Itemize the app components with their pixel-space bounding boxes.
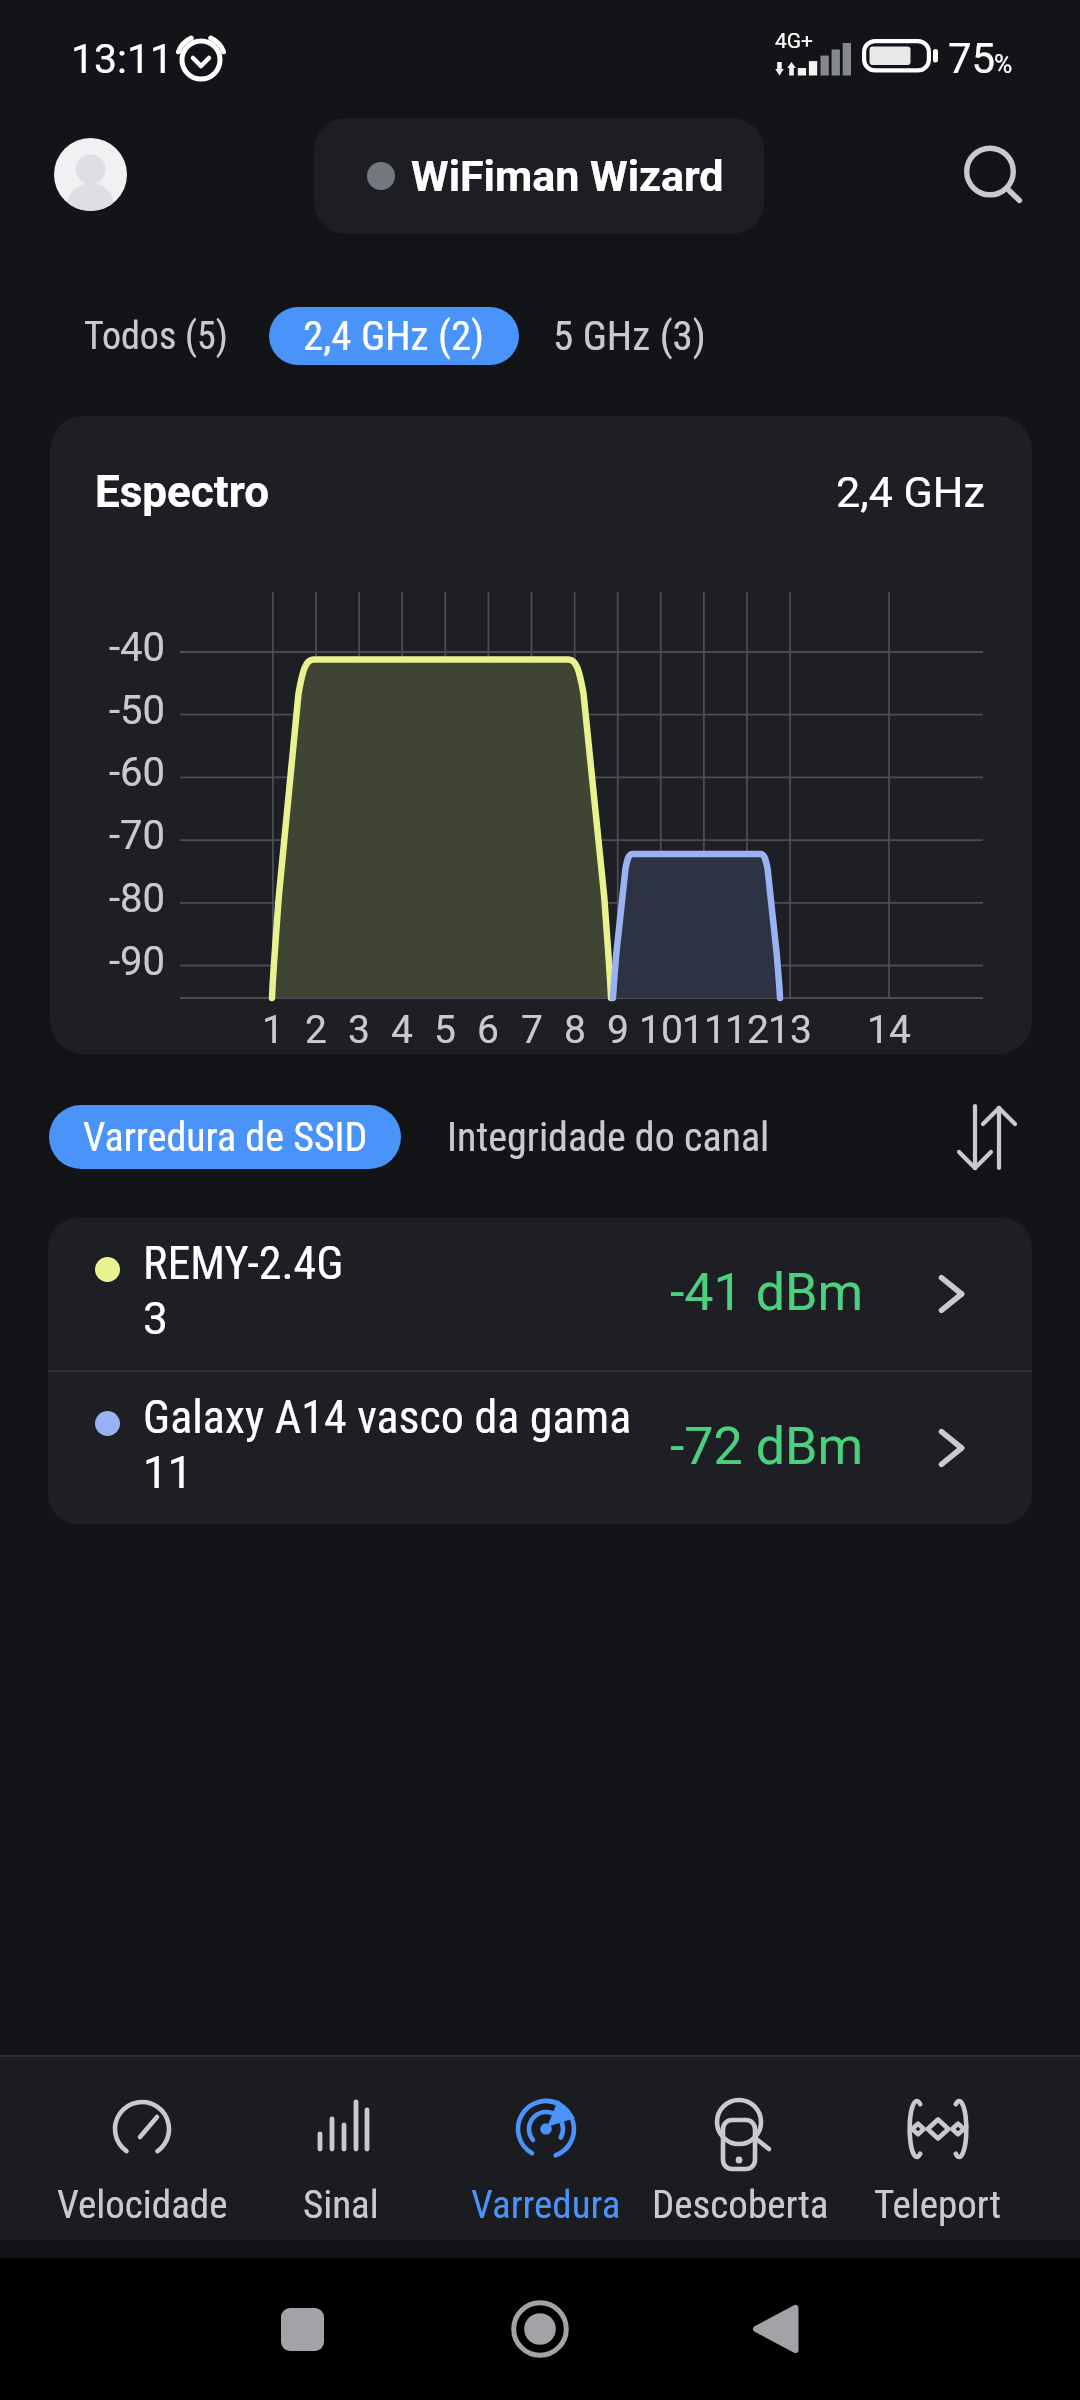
button[interactable]: Teleport — [838, 2057, 1038, 2240]
staticText: Teleport — [874, 2182, 1002, 2228]
staticText: Sinal — [303, 2182, 379, 2228]
staticText: 10 — [639, 1007, 683, 1053]
button[interactable]: Account — [54, 138, 127, 211]
staticText: 3 — [143, 1293, 168, 1345]
staticText: -72 dBm — [670, 1416, 864, 1477]
button[interactable]: REMY-2.4G — [48, 1218, 1032, 1370]
staticText: 12 — [725, 1007, 769, 1053]
staticText: 4G+ — [775, 29, 814, 54]
button[interactable]: 2,4 GHz (2) — [269, 307, 519, 365]
staticText: WiFiman Wizard — [411, 151, 724, 201]
button[interactable]: Galaxy A14 vasco da gama — [48, 1372, 1032, 1524]
staticText: -80 — [109, 875, 166, 922]
staticText: Varredura — [471, 2182, 621, 2228]
staticText: 7 — [521, 1007, 543, 1053]
button[interactable]: Back — [721, 2274, 831, 2384]
staticText: Espectro — [95, 466, 269, 518]
staticText: Velocidade — [57, 2182, 228, 2228]
staticText: -50 — [109, 687, 166, 734]
button[interactable]: Recents — [247, 2274, 357, 2384]
staticText: 2,4 GHz (2) — [303, 312, 485, 360]
staticText: Descoberta — [652, 2182, 829, 2228]
button[interactable]: Sinal — [241, 2057, 441, 2240]
staticText: Galaxy A14 vasco da gama — [143, 1390, 632, 1444]
button[interactable]: Integridade do canal — [430, 1105, 782, 1169]
staticText: 2 — [305, 1007, 327, 1053]
button[interactable]: Home — [485, 2274, 595, 2384]
staticText: 75 — [948, 34, 996, 83]
staticText: -60 — [109, 749, 166, 796]
staticText: 5 GHz (3) — [553, 312, 706, 360]
staticText: 11 — [143, 1447, 193, 1499]
staticText: % — [994, 50, 1013, 79]
staticText: -90 — [109, 938, 166, 985]
button[interactable]: Varredura — [446, 2057, 646, 2240]
staticText: 4 — [391, 1007, 413, 1053]
button[interactable]: Todos (5) — [56, 307, 256, 365]
button[interactable]: Search — [945, 126, 1035, 216]
staticText: Todos (5) — [84, 314, 228, 359]
staticText: -40 — [109, 624, 166, 671]
staticText: Varredura de SSID — [83, 1114, 368, 1161]
staticText: 3 — [348, 1007, 370, 1053]
staticText: 14 — [867, 1007, 911, 1053]
button[interactable]: Descoberta — [640, 2057, 840, 2240]
staticText: -41 dBm — [670, 1262, 864, 1323]
staticText: REMY-2.4G — [143, 1236, 344, 1290]
button[interactable]: Sort — [950, 1092, 1038, 1180]
staticText: -70 — [109, 812, 166, 859]
staticText: 5 — [434, 1007, 456, 1053]
staticText: 13 — [768, 1007, 812, 1053]
staticText: 13:11 — [71, 35, 174, 83]
button[interactable]: 5 GHz (3) — [529, 307, 729, 365]
button[interactable]: Varredura de SSID — [49, 1105, 401, 1169]
button[interactable]: WiFiman Wizard — [314, 118, 764, 234]
staticText: 2,4 GHz — [836, 467, 985, 517]
button[interactable]: Velocidade — [42, 2057, 242, 2240]
staticText: 6 — [477, 1007, 499, 1053]
staticText: 11 — [682, 1007, 726, 1053]
staticText: Integridade do canal — [447, 1114, 770, 1161]
staticText: 8 — [564, 1007, 586, 1053]
staticText: 9 — [607, 1007, 629, 1053]
staticText: 1 — [262, 1007, 284, 1053]
